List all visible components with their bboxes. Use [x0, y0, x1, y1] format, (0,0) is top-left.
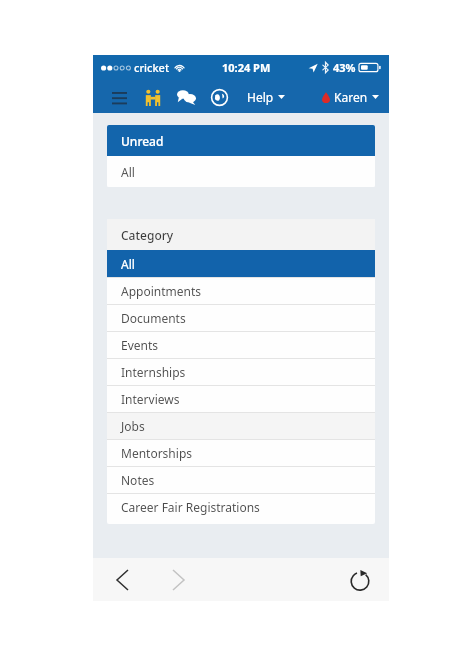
staticText: Appointments: [121, 283, 202, 299]
staticText: Career Fair Registrations: [121, 499, 260, 515]
staticText: Category: [121, 227, 174, 243]
button[interactable]: Help: [243, 85, 289, 109]
staticText: Unread: [121, 133, 164, 149]
button[interactable]: Forward: [161, 563, 195, 597]
button[interactable]: Notes: [107, 467, 375, 493]
staticText: Jobs: [121, 418, 145, 434]
staticText: Internships: [121, 364, 186, 380]
button[interactable]: Events: [107, 332, 375, 358]
button[interactable]: Messages: [172, 83, 200, 111]
button[interactable]: Internships: [107, 359, 375, 385]
button[interactable]: Back: [105, 563, 139, 597]
staticText: Mentorships: [121, 445, 193, 461]
button[interactable]: Karen: [322, 85, 389, 109]
button[interactable]: All: [107, 250, 375, 277]
staticText: Interviews: [121, 391, 180, 407]
staticText: Notes: [121, 472, 155, 488]
button[interactable]: Career Fair Registrations: [107, 494, 375, 520]
button[interactable]: All: [107, 156, 375, 187]
button[interactable]: People: [139, 83, 167, 111]
button[interactable]: Appointments: [107, 278, 375, 304]
button[interactable]: Global: [205, 83, 233, 111]
button[interactable]: Jobs: [107, 413, 375, 439]
staticText: cricket: [134, 60, 170, 75]
staticText: Events: [121, 337, 159, 353]
staticText: 43%: [333, 60, 356, 75]
button[interactable]: Category: [107, 219, 375, 250]
staticText: All: [121, 256, 135, 272]
staticText: All: [121, 164, 135, 180]
button[interactable]: Mentorships: [107, 440, 375, 466]
button[interactable]: Menu: [105, 83, 133, 111]
button[interactable]: Reload: [343, 563, 377, 597]
staticText: 10:24 PM: [222, 60, 271, 75]
button[interactable]: Interviews: [107, 386, 375, 412]
staticText: Help: [247, 89, 274, 105]
staticText: Documents: [121, 310, 186, 326]
button[interactable]: Documents: [107, 305, 375, 331]
button[interactable]: Unread: [107, 125, 375, 156]
staticText: Karen: [334, 89, 368, 105]
